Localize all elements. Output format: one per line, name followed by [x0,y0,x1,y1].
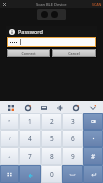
staticText: / [9,136,11,141]
staticText: Scan BLE Device [36,2,67,7]
staticText: 8 [50,152,54,161]
staticText: 4 [28,134,32,143]
button[interactable]: Hide keyboard [87,102,98,113]
button[interactable] [7,37,96,47]
staticText: Connect [21,51,36,56]
button[interactable]: Settings [22,102,33,113]
button[interactable]: 3 [62,113,83,130]
button[interactable]: # [83,147,103,165]
button[interactable]: 2 [41,113,62,130]
staticText: SCAN [92,2,102,7]
staticText: Password [18,28,43,35]
staticText: 3 [71,117,75,126]
staticText: * [8,119,11,124]
button[interactable]: 7 [19,147,41,165]
button[interactable]: + [0,147,19,165]
button[interactable]: Undo [19,165,41,183]
staticText: 5 [50,134,54,143]
button[interactable]: / [0,130,19,147]
button[interactable]: Clipboard [38,102,49,113]
button[interactable]: Backspace [83,113,103,130]
staticText: + [8,154,11,159]
staticText: Cancel [68,51,80,56]
button[interactable]: 0 [41,165,62,183]
staticText: 0 [50,170,54,179]
button[interactable]: Symbols [0,165,19,183]
button[interactable]: Preferences [70,102,81,113]
button[interactable]: Space [62,165,83,183]
button[interactable]: * [0,113,19,130]
staticText: 6 [71,134,75,143]
button[interactable]: Connect [7,49,50,57]
button[interactable]: 8 [41,147,62,165]
staticText: 9 [71,152,75,161]
button[interactable]: Voice input [54,102,65,113]
button[interactable]: Cancel [52,49,96,57]
staticText: 7 [28,152,32,161]
button[interactable]: Period [83,130,103,147]
button[interactable]: 6 [62,130,83,147]
button[interactable]: 5 [41,130,62,147]
staticText: # [91,152,96,161]
button[interactable]: 9 [62,147,83,165]
button[interactable]: 1 [19,113,41,130]
button[interactable]: Close [0,0,8,8]
button[interactable]: Keyboard layouts [5,102,16,113]
button[interactable]: 4 [19,130,41,147]
staticText: 2 [50,117,54,126]
staticText: 1 [28,117,32,126]
button[interactable]: Enter [83,165,103,183]
button[interactable]: SCAN [92,2,102,7]
